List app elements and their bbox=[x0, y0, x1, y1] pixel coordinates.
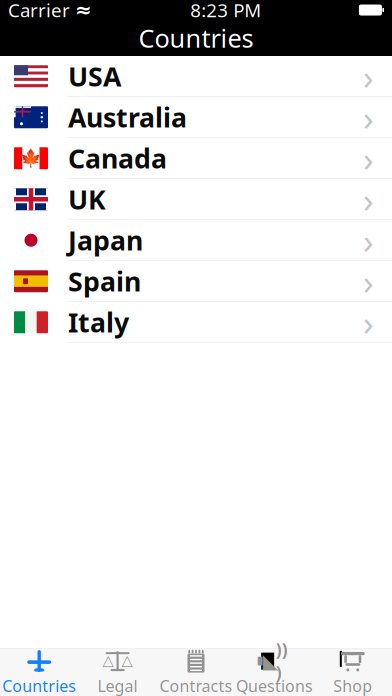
staticText: Canada bbox=[68, 140, 167, 176]
staticText: › bbox=[363, 94, 374, 140]
staticText: Shop bbox=[333, 675, 372, 696]
button[interactable]: Australia bbox=[0, 97, 392, 138]
staticText: ◣ bbox=[263, 650, 278, 672]
button[interactable]: Contracts bbox=[157, 644, 235, 696]
button[interactable]: 🍁 bbox=[0, 138, 392, 179]
staticText: › bbox=[363, 258, 374, 304]
staticText: Countries bbox=[2, 675, 76, 696]
staticText: △ bbox=[122, 652, 133, 668]
staticText: › bbox=[363, 299, 374, 345]
button[interactable]: △ bbox=[78, 644, 157, 696]
staticText: Legal bbox=[98, 675, 138, 696]
staticText: Australia bbox=[68, 99, 187, 135]
staticText: Questions bbox=[236, 675, 313, 696]
button[interactable]: ◣ bbox=[235, 644, 314, 696]
staticText: UK bbox=[68, 181, 106, 217]
staticText: › bbox=[363, 135, 374, 181]
button[interactable]: USA bbox=[0, 56, 392, 97]
button[interactable]: Japan bbox=[0, 220, 392, 261]
staticText: Japan bbox=[68, 222, 143, 258]
staticText: › bbox=[363, 53, 374, 99]
staticText: Countries bbox=[138, 21, 253, 55]
button[interactable]: ◥ bbox=[314, 644, 392, 696]
staticText: ≈ bbox=[75, 0, 92, 21]
button[interactable]: Spain bbox=[0, 261, 392, 302]
staticText: 8:23 PM bbox=[190, 0, 261, 22]
staticText: › bbox=[363, 217, 374, 263]
staticText: Italy bbox=[68, 304, 129, 340]
staticText: 🍁 bbox=[20, 148, 42, 168]
staticText: › bbox=[363, 176, 374, 222]
button[interactable]: Countries bbox=[0, 644, 78, 696]
button[interactable]: UK bbox=[0, 179, 392, 220]
staticText: △ bbox=[103, 652, 114, 668]
staticText: Carrier bbox=[8, 0, 70, 22]
staticText: ))) bbox=[276, 638, 288, 684]
button[interactable]: Italy bbox=[0, 302, 392, 343]
staticText: Spain bbox=[68, 263, 141, 299]
staticText: Contracts bbox=[159, 675, 232, 696]
staticText: USA bbox=[68, 58, 121, 94]
